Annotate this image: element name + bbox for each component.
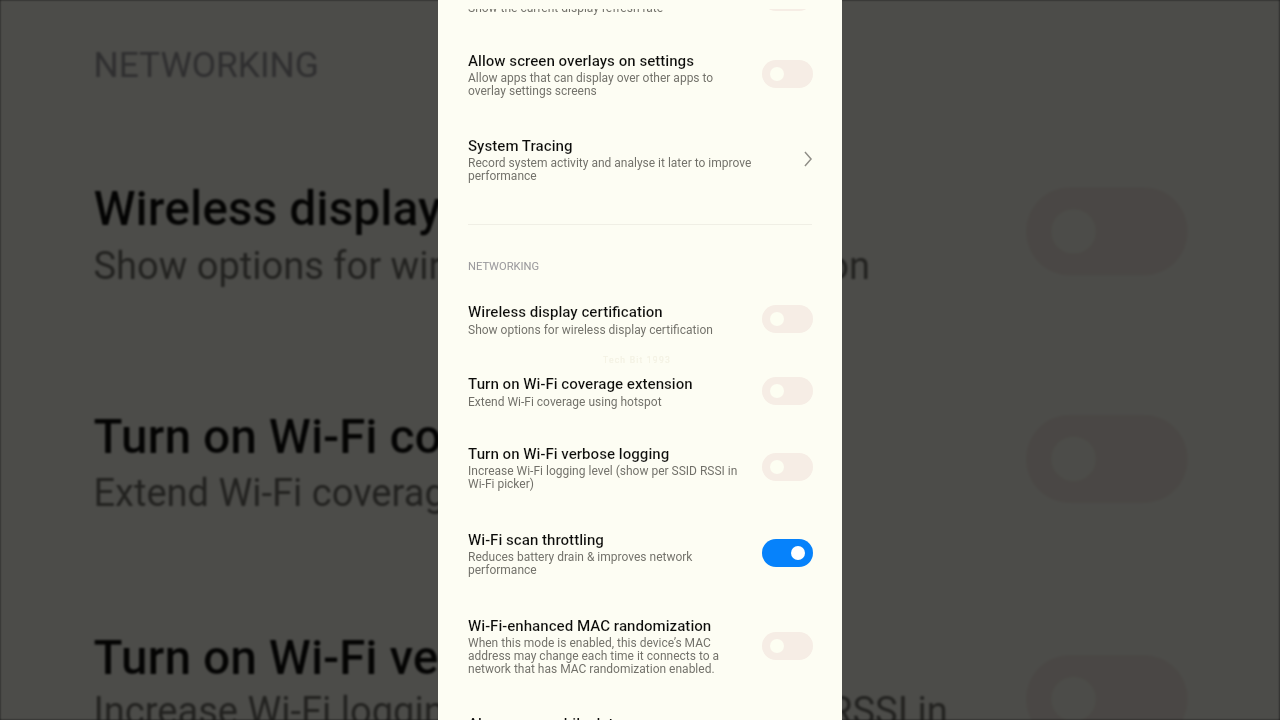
button[interactable]: Wireless display certification [762, 305, 813, 333]
staticText: Turn on Wi-Fi verbose logging [93, 630, 997, 686]
button[interactable]: Allow screen overlays on settings [762, 60, 813, 88]
button[interactable]: Show refresh rate [438, 0, 842, 41]
staticText: Increase Wi-Fi logging level (show per S… [93, 690, 997, 720]
staticText: Turn on Wi-Fi verbose logging [468, 445, 753, 463]
button[interactable]: Wi-Fi scan throttling [762, 539, 813, 567]
staticText: Wireless display certification [468, 303, 753, 321]
staticText: Always-on mobile data [468, 715, 753, 720]
staticText: Show options for wireless display certif… [93, 244, 997, 285]
button[interactable]: Turn on Wi-Fi verbose logging [438, 433, 842, 517]
staticText: Show the current display refresh rate [468, 1, 753, 14]
button[interactable]: Allow screen overlays on settings [438, 40, 842, 124]
button[interactable]: Open System Tracing [792, 143, 824, 175]
button[interactable]: Wireless display certification [438, 292, 842, 363]
staticText: When this mode is enabled, this device’s… [468, 636, 753, 675]
button[interactable]: Turn on Wi-Fi coverage extension [438, 363, 842, 434]
button[interactable]: System Tracing [438, 125, 842, 209]
staticText: Wi-Fi-enhanced MAC randomization [468, 617, 753, 635]
staticText: Tech Bit 1993 [603, 355, 671, 365]
button[interactable]: Wi-Fi scan throttling [438, 519, 842, 603]
staticText: System Tracing [468, 137, 753, 155]
button[interactable]: Always-on mobile data [438, 703, 842, 720]
staticText: NETWORKING [93, 45, 322, 86]
button[interactable]: Wi-Fi-enhanced MAC randomization [762, 632, 813, 660]
staticText: Extend Wi-Fi coverage using hotspot [468, 395, 753, 408]
staticText: Reduces battery drain & improves network… [468, 550, 753, 576]
button[interactable]: Turn on Wi-Fi coverage extension [762, 377, 813, 405]
staticText: Turn on Wi-Fi coverage extension [93, 408, 997, 465]
staticText: Allow apps that can display over other a… [468, 71, 753, 97]
staticText: Increase Wi-Fi logging level (show per S… [468, 464, 753, 490]
button[interactable]: Turn on Wi-Fi coverage extension [0, 370, 1280, 595]
staticText: Wireless display certification [93, 181, 997, 238]
staticText: Wi-Fi scan throttling [468, 531, 753, 549]
staticText: Extend Wi-Fi coverage using hotspot [93, 472, 997, 513]
button[interactable]: Show refresh rate [762, 0, 813, 11]
button[interactable]: Turn on Wi-Fi verbose logging [762, 453, 813, 481]
staticText: Record system activity and analyse it la… [468, 156, 753, 182]
staticText: NETWORKING [468, 260, 540, 273]
staticText: Show options for wireless display certif… [468, 323, 753, 336]
button[interactable]: Turn on Wi-Fi verbose logging [0, 592, 1280, 720]
button[interactable]: Wireless display certification [0, 146, 1280, 370]
staticText: Turn on Wi-Fi coverage extension [468, 375, 753, 393]
button[interactable]: Wi-Fi-enhanced MAC randomization [438, 605, 842, 703]
staticText: Allow screen overlays on settings [468, 52, 753, 70]
